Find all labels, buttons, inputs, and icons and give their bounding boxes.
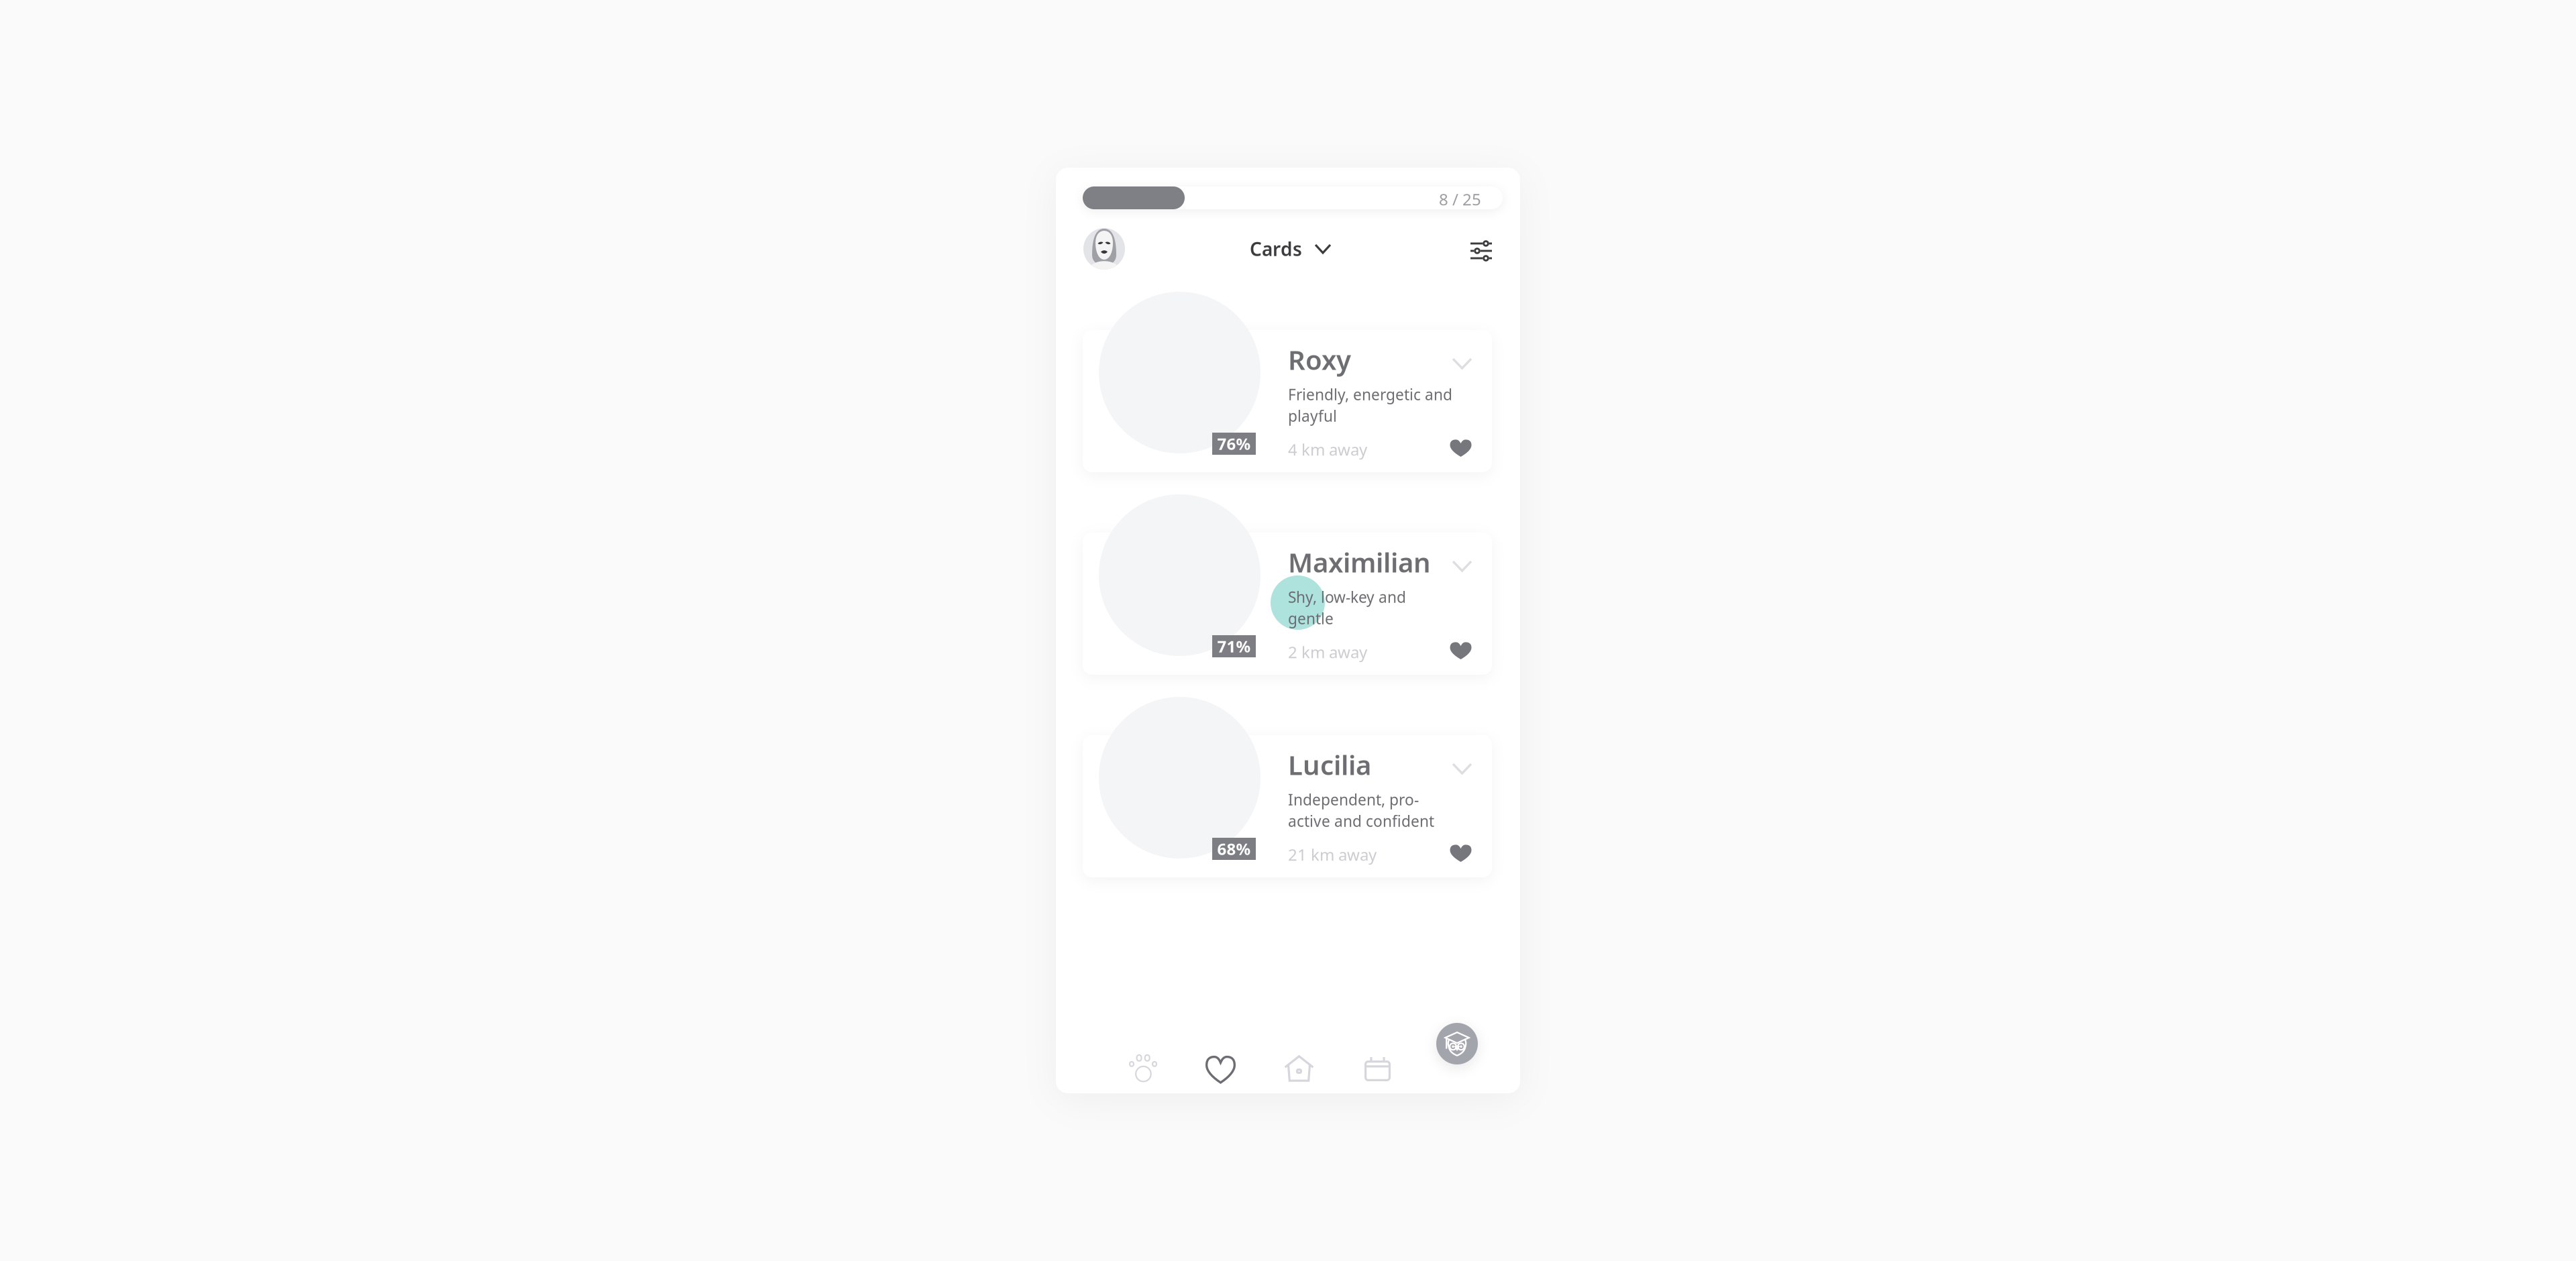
staticText: Friendly, energetic and [1288, 384, 1452, 404]
staticText: 76% [1217, 433, 1251, 454]
staticText: 2 km away [1288, 641, 1367, 663]
staticText: active and confident [1288, 811, 1434, 831]
button[interactable]: Profile [1083, 228, 1125, 270]
staticText: gentle [1288, 608, 1334, 628]
button[interactable]: Learn [1436, 1023, 1478, 1064]
button[interactable]: Cards [1248, 235, 1332, 263]
staticText: Roxy [1288, 342, 1351, 377]
button[interactable]: Favourites [1206, 1056, 1235, 1083]
staticText: 4 km away [1288, 439, 1367, 460]
staticText: 8 / 25 [1439, 189, 1481, 210]
button[interactable]: Pets [1129, 1054, 1157, 1082]
staticText: Independent, pro- [1288, 789, 1419, 810]
staticText: playful [1288, 406, 1337, 426]
staticText: Lucilia [1288, 747, 1371, 782]
staticText: 68% [1217, 838, 1251, 860]
staticText: 71% [1217, 636, 1251, 657]
staticText: Cards [1250, 236, 1302, 261]
button[interactable]: Filters [1465, 235, 1497, 267]
staticText: Shy, low-key and [1288, 587, 1406, 607]
staticText: 21 km away [1288, 844, 1377, 865]
button[interactable]: Home [1284, 1055, 1314, 1082]
button[interactable]: Calendar [1364, 1057, 1391, 1081]
staticText: Maximilian [1288, 544, 1431, 580]
